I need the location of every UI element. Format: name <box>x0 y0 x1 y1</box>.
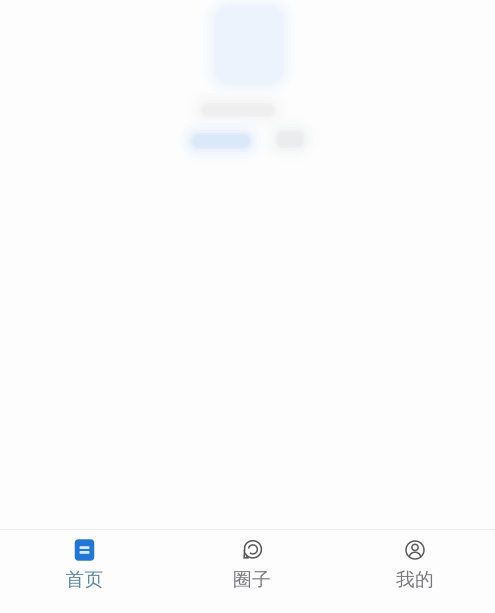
button[interactable]: 我的 <box>335 530 495 613</box>
button[interactable]: 圈子 <box>169 530 335 613</box>
staticText: 我的 <box>396 568 434 591</box>
staticText: 首页 <box>65 568 103 591</box>
staticText: 圈子 <box>233 568 271 591</box>
button[interactable]: 首页 <box>0 530 169 613</box>
